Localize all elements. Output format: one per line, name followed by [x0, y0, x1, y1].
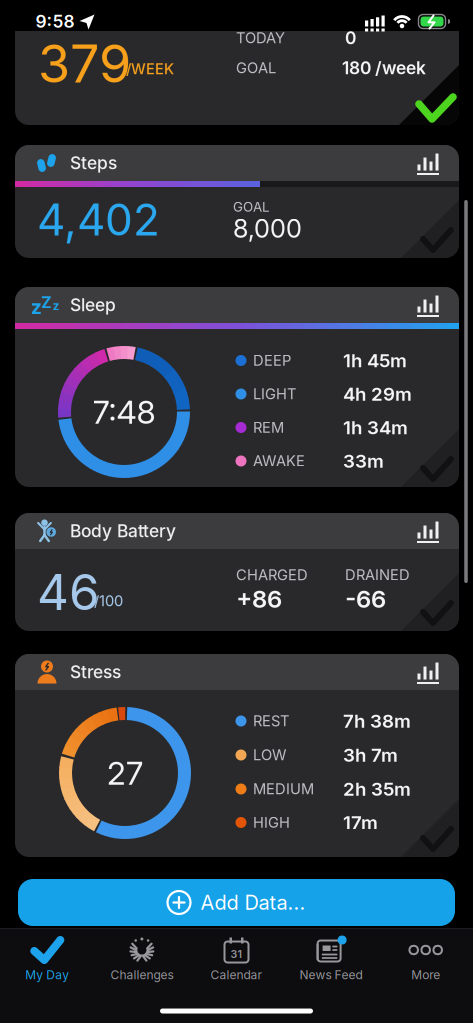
staticText: More [411, 968, 440, 982]
staticText: Add Data... [200, 891, 305, 914]
button[interactable]: Add Data... [18, 879, 455, 926]
staticText: DRAINED [345, 566, 410, 584]
button[interactable]: Stress [15, 654, 459, 857]
staticText: HIGH [253, 814, 290, 831]
button[interactable]: 31 [189, 929, 283, 991]
button[interactable]: z [15, 287, 459, 487]
staticText: 4,402 [37, 193, 160, 245]
button[interactable]: Steps [15, 145, 459, 258]
staticText: REM [253, 419, 284, 436]
staticText: z [30, 295, 41, 319]
staticText: MEDIUM [253, 780, 314, 798]
staticText: Z [41, 293, 52, 312]
staticText: 33m [343, 450, 384, 472]
staticText: 180 /week [342, 58, 426, 78]
button[interactable]: My Day [0, 929, 94, 991]
staticText: 0 [345, 28, 356, 48]
staticText: My Day [25, 968, 69, 982]
staticText: /WEEK [126, 60, 174, 78]
staticText: +86 [236, 585, 282, 613]
staticText: 9:58 [35, 11, 74, 32]
staticText: REST [253, 712, 289, 730]
staticText: 46 [37, 563, 100, 621]
button[interactable]: 379 [15, 16, 459, 125]
staticText: LOW [253, 746, 286, 764]
staticText: LIGHT [253, 385, 296, 403]
staticText: Calendar [210, 968, 262, 982]
staticText: 2h 35m [343, 778, 411, 800]
staticText: Sleep [70, 295, 116, 315]
staticText: Body Battery [70, 521, 176, 541]
staticText: /100 [94, 592, 123, 610]
staticText: Stress [70, 662, 121, 682]
staticText: CHARGED [236, 566, 308, 584]
staticText: z [52, 299, 59, 313]
staticText: 1h 34m [343, 416, 408, 438]
staticText: 4h 29m [343, 383, 412, 405]
button[interactable]: Challenges [95, 929, 189, 991]
staticText: News Feed [300, 968, 363, 982]
staticText: TODAY [236, 29, 285, 47]
staticText: GOAL [233, 199, 270, 215]
staticText: -66 [345, 585, 386, 613]
staticText: 31 [230, 948, 242, 960]
staticText: GOAL [236, 59, 276, 77]
staticText: 3h 7m [343, 744, 398, 766]
button[interactable]: Body Battery [15, 513, 459, 631]
staticText: AWAKE [253, 452, 305, 470]
staticText: 27 [107, 754, 143, 792]
staticText: 1h 45m [343, 349, 407, 371]
staticText: Challenges [110, 968, 173, 982]
staticText: 379 [38, 33, 131, 94]
staticText: 8,000 [233, 214, 302, 243]
button[interactable]: More [379, 929, 473, 991]
staticText: 7:48 [92, 393, 155, 431]
staticText: 17m [343, 811, 378, 833]
staticText: 7h 38m [343, 710, 411, 732]
staticText: Steps [70, 153, 117, 173]
staticText: DEEP [253, 352, 291, 369]
button[interactable]: News Feed [284, 929, 378, 991]
